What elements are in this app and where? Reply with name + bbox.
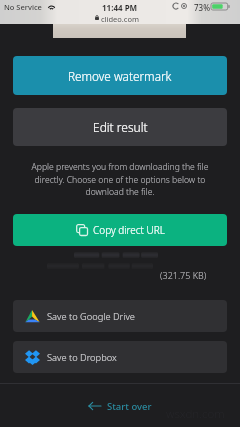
staticText: Start over xyxy=(107,400,152,413)
staticText: Remove watermark xyxy=(68,68,172,84)
button[interactable]: Remove watermark xyxy=(13,56,227,95)
staticText: (321.75 KB) xyxy=(160,269,207,281)
staticText: 73% xyxy=(194,2,210,13)
staticText: Copy direct URL xyxy=(93,223,165,237)
staticText: Save to Dropbox xyxy=(47,351,117,364)
button[interactable]: Start over xyxy=(0,396,240,416)
staticText: No Service xyxy=(4,2,42,12)
button[interactable]: Save to Google Drive xyxy=(13,300,227,332)
button[interactable]: Edit result xyxy=(13,108,227,146)
staticText: Edit result xyxy=(93,119,148,135)
staticText: Apple prevents you from downloading the … xyxy=(16,161,224,197)
staticText: 11:44 PM xyxy=(102,2,138,13)
staticText: clideo.com xyxy=(101,14,140,24)
button[interactable]: Copy direct URL xyxy=(13,214,227,246)
staticText: Save to Google Drive xyxy=(47,310,135,323)
button[interactable]: Save to Dropbox xyxy=(13,341,227,373)
